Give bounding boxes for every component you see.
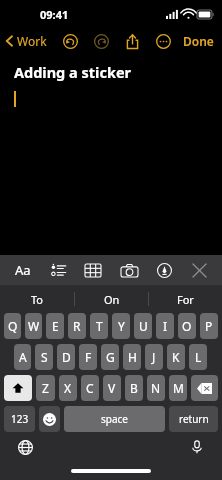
- staticText: Z: [42, 380, 49, 396]
- button[interactable]: F: [79, 344, 97, 370]
- button[interactable]: T: [90, 313, 108, 339]
- button[interactable]: J: [145, 344, 163, 370]
- button[interactable]: Dictate: [186, 436, 208, 458]
- button[interactable]: Text format: [8, 257, 38, 283]
- staticText: K: [172, 349, 180, 365]
- button[interactable]: B: [125, 375, 143, 401]
- staticText: J: [152, 349, 156, 365]
- staticText: P: [205, 318, 213, 334]
- staticText: W: [28, 318, 40, 334]
- staticText: B: [130, 380, 138, 396]
- staticText: S: [41, 349, 48, 365]
- button[interactable]: Y: [112, 313, 130, 339]
- staticText: Q: [8, 318, 18, 334]
- staticText: Work: [17, 33, 47, 49]
- staticText: Y: [118, 318, 125, 334]
- button[interactable]: Markup: [149, 257, 179, 283]
- button[interactable]: Undo: [59, 30, 81, 52]
- staticText: 09:41: [40, 7, 69, 22]
- button[interactable]: return: [169, 406, 218, 432]
- button[interactable]: Done: [181, 33, 216, 49]
- button[interactable]: More: [152, 30, 174, 52]
- button[interactable]: space: [64, 406, 165, 432]
- staticText: On: [104, 292, 120, 307]
- button[interactable]: H: [123, 344, 141, 370]
- button[interactable]: Table: [78, 257, 108, 283]
- staticText: For: [177, 292, 194, 307]
- staticText: E: [52, 318, 59, 334]
- staticText: return: [179, 412, 209, 426]
- staticText: Done: [183, 33, 214, 49]
- button[interactable]: Checklist: [43, 257, 73, 283]
- staticText: T: [96, 318, 103, 334]
- staticText: O: [182, 318, 192, 334]
- button[interactable]: Change keyboard: [14, 436, 36, 458]
- button[interactable]: O: [178, 313, 196, 339]
- staticText: space: [101, 412, 128, 426]
- staticText: L: [195, 349, 202, 365]
- button[interactable]: I: [156, 313, 174, 339]
- staticText: Adding a sticker: [14, 62, 132, 82]
- button[interactable]: L: [189, 344, 207, 370]
- button[interactable]: Camera: [114, 257, 144, 283]
- button[interactable]: S: [35, 344, 53, 370]
- button[interactable]: X: [59, 375, 77, 401]
- staticText: V: [108, 380, 116, 396]
- button[interactable]: K: [167, 344, 185, 370]
- staticText: N: [151, 380, 161, 396]
- staticText: C: [86, 380, 94, 396]
- button[interactable]: Z: [36, 375, 55, 401]
- button[interactable]: M: [169, 375, 187, 401]
- staticText: I: [163, 318, 168, 334]
- button[interactable]: 123: [4, 406, 35, 432]
- button[interactable]: G: [101, 344, 119, 370]
- button[interactable]: A: [14, 344, 31, 370]
- staticText: U: [139, 318, 148, 334]
- button[interactable]: Share: [121, 30, 143, 52]
- button[interactable]: Close: [184, 257, 214, 283]
- button[interactable]: Work: [5, 33, 47, 49]
- button[interactable]: R: [68, 313, 86, 339]
- staticText: 123: [11, 412, 29, 426]
- button[interactable]: D: [57, 344, 75, 370]
- staticText: To: [31, 292, 44, 307]
- staticText: F: [85, 349, 92, 365]
- button[interactable]: To: [0, 285, 74, 313]
- staticText: D: [62, 349, 71, 365]
- staticText: Aa: [15, 261, 31, 279]
- staticText: M: [173, 380, 184, 396]
- button[interactable]: E: [46, 313, 64, 339]
- button[interactable]: Emoji: [39, 406, 60, 432]
- staticText: G: [106, 349, 115, 365]
- staticText: A: [19, 349, 27, 365]
- button[interactable]: W: [25, 313, 42, 339]
- button[interactable]: Redo: [90, 30, 112, 52]
- button[interactable]: U: [134, 313, 152, 339]
- staticText: H: [128, 349, 137, 365]
- button[interactable]: Q: [4, 313, 21, 339]
- button[interactable]: N: [147, 375, 165, 401]
- button[interactable]: Backspace: [191, 375, 218, 401]
- button[interactable]: For: [149, 285, 222, 313]
- button[interactable]: C: [81, 375, 99, 401]
- staticText: R: [73, 318, 81, 334]
- staticText: X: [64, 380, 72, 396]
- button[interactable]: V: [103, 375, 121, 401]
- button[interactable]: P: [200, 313, 218, 339]
- button[interactable]: On: [75, 285, 148, 313]
- button[interactable]: Shift: [4, 375, 32, 401]
